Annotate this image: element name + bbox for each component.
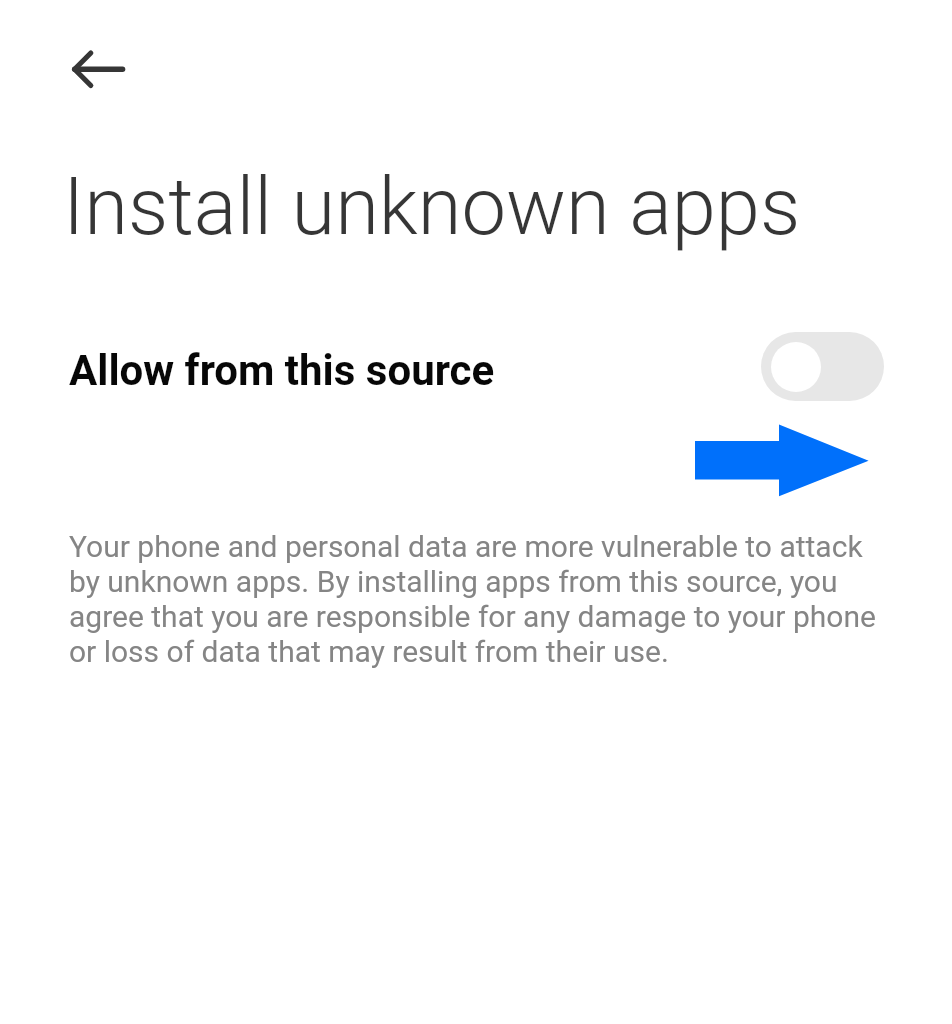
staticText: Your phone and personal data are more vu… [69, 529, 881, 669]
button[interactable]: Allow from this source [761, 332, 884, 401]
button[interactable]: Navigate up [14, 12, 128, 126]
staticText: Install unknown apps [63, 160, 801, 253]
other: Callout arrow pointing at the switch [690, 418, 880, 504]
staticText: Allow from this source [69, 346, 495, 395]
button[interactable]: Allow from this source [0, 312, 952, 422]
